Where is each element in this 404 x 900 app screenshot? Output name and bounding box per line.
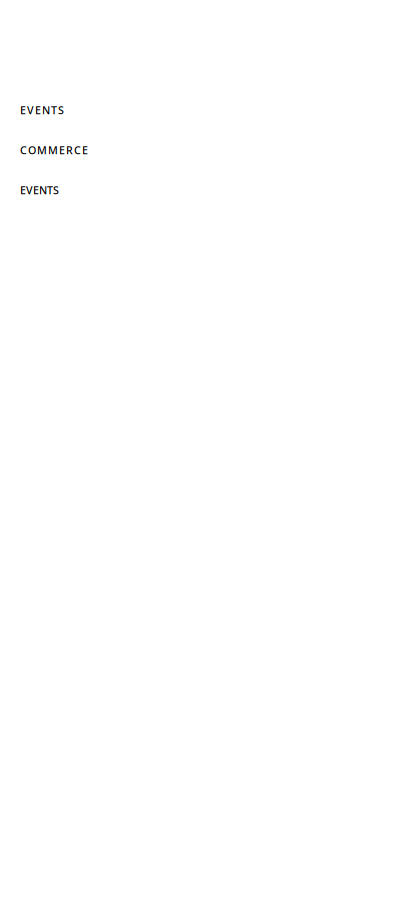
staticText: EVENTS	[20, 183, 59, 197]
staticText: COMMERCE	[20, 143, 88, 157]
staticText: EVENTS	[20, 103, 64, 117]
